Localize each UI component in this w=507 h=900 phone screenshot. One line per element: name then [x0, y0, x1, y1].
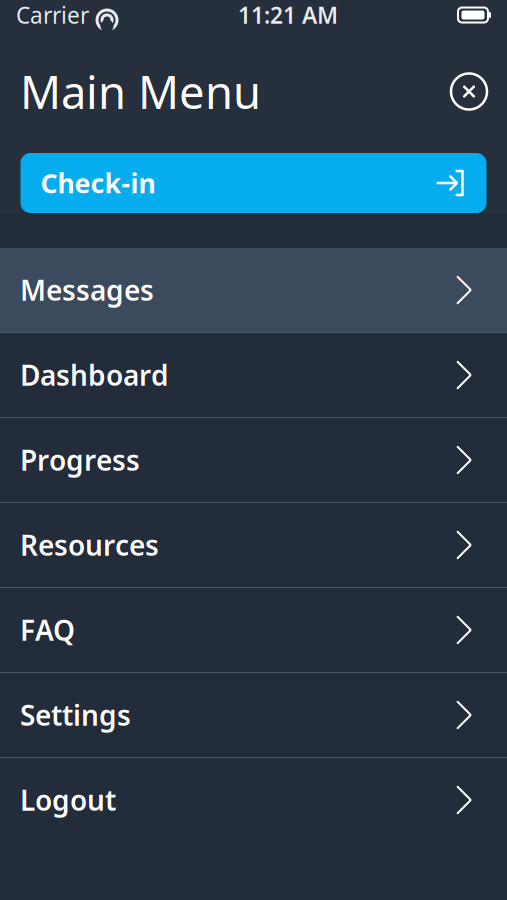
button[interactable]: Logout [0, 758, 507, 842]
staticText: Dashboard [20, 356, 169, 394]
staticText: Main Menu [20, 61, 261, 122]
button[interactable]: Progress [0, 418, 507, 502]
button[interactable]: Resources [0, 503, 507, 587]
button[interactable]: Close [447, 69, 491, 113]
staticText: Progress [20, 441, 140, 479]
staticText: Messages [20, 271, 154, 309]
button[interactable]: Check-in [20, 153, 486, 213]
staticText: Logout [20, 781, 116, 819]
button[interactable]: Dashboard [0, 333, 507, 417]
staticText: Settings [20, 696, 131, 734]
button[interactable]: Settings [0, 673, 507, 757]
staticText: 11:21 AM [238, 0, 338, 30]
button[interactable]: Messages [0, 248, 507, 332]
button[interactable]: FAQ [0, 588, 507, 672]
staticText: FAQ [20, 611, 75, 649]
staticText: Resources [20, 526, 159, 564]
staticText: Check-in [40, 165, 155, 201]
staticText: Carrier [16, 0, 89, 30]
